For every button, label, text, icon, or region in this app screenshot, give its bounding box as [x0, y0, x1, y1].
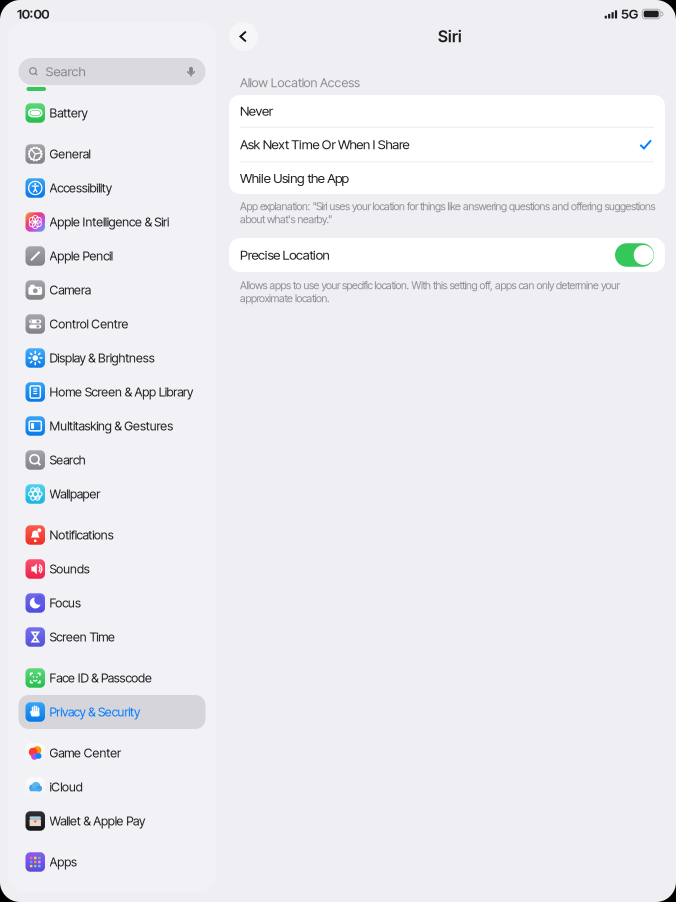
button[interactable]: Back [229, 22, 258, 51]
staticText: Control Centre [49, 316, 128, 332]
button[interactable]: Ask Next Time Or When I Share [229, 127, 665, 161]
staticText: Apple Pencil [49, 248, 113, 264]
button[interactable]: Home Screen & App Library [18, 375, 205, 409]
button[interactable]: Apple Pencil [18, 239, 205, 273]
staticText: Game Center [49, 745, 121, 761]
button[interactable]: Never [229, 95, 665, 127]
staticText: Accessibility [49, 180, 112, 196]
button[interactable]: Search [18, 443, 205, 477]
staticText: Allows apps to use your specific locatio… [240, 279, 619, 305]
button[interactable]: Game Center [18, 736, 205, 770]
staticText: Precise Location [240, 247, 329, 263]
button[interactable]: Privacy & Security [18, 695, 205, 729]
staticText: App explanation: "Siri uses your locatio… [240, 200, 655, 226]
staticText: Search [45, 63, 85, 79]
button[interactable]: Accessibility [18, 171, 205, 205]
button[interactable]: Battery [18, 96, 205, 130]
staticText: iCloud [49, 779, 83, 795]
button[interactable]: Multitasking & Gestures [18, 409, 205, 443]
button[interactable]: Screen Time [18, 620, 205, 654]
staticText: Home Screen & App Library [49, 384, 193, 400]
staticText: Screen Time [49, 629, 115, 645]
staticText: Battery [49, 105, 88, 121]
staticText: Display & Brightness [49, 350, 155, 366]
button[interactable]: While Using the App [229, 162, 665, 194]
button[interactable]: Control Centre [18, 307, 205, 341]
staticText: Face ID & Passcode [49, 670, 152, 686]
staticText: Privacy & Security [49, 704, 140, 720]
staticText: General [49, 146, 91, 162]
button[interactable]: Notifications [18, 518, 205, 552]
button[interactable]: Focus [18, 586, 205, 620]
staticText: Siri [438, 27, 462, 46]
staticText: Ask Next Time Or When I Share [240, 136, 410, 152]
staticText: Focus [49, 595, 81, 611]
staticText: Search [49, 452, 86, 468]
button[interactable]: Precise Location [615, 243, 654, 267]
staticText: Never [240, 103, 273, 119]
button[interactable]: Face ID & Passcode [18, 661, 205, 695]
staticText: 10:00 [17, 6, 49, 22]
button[interactable]: General [18, 137, 205, 171]
staticText: Wallet & Apple Pay [49, 813, 145, 829]
button[interactable]: Wallpaper [18, 477, 205, 511]
staticText: Camera [49, 282, 91, 298]
button[interactable]: Wallet & Apple Pay [18, 804, 205, 838]
button[interactable]: Display & Brightness [18, 341, 205, 375]
button[interactable]: iCloud [18, 770, 205, 804]
button[interactable]: Sounds [18, 552, 205, 586]
staticText: While Using the App [240, 170, 349, 186]
button[interactable]: Apps [18, 845, 205, 879]
staticText: Sounds [49, 561, 90, 577]
staticText: Wallpaper [49, 486, 100, 502]
button[interactable]: Camera [18, 273, 205, 307]
staticText: 5G [621, 6, 639, 22]
staticText: Apple Intelligence & Siri [49, 214, 169, 230]
staticText: Allow Location Access [240, 75, 360, 90]
staticText: Multitasking & Gestures [49, 418, 173, 434]
staticText: Apps [49, 854, 77, 870]
staticText: Notifications [49, 527, 114, 543]
button[interactable]: Apple Intelligence & Siri [18, 205, 205, 239]
